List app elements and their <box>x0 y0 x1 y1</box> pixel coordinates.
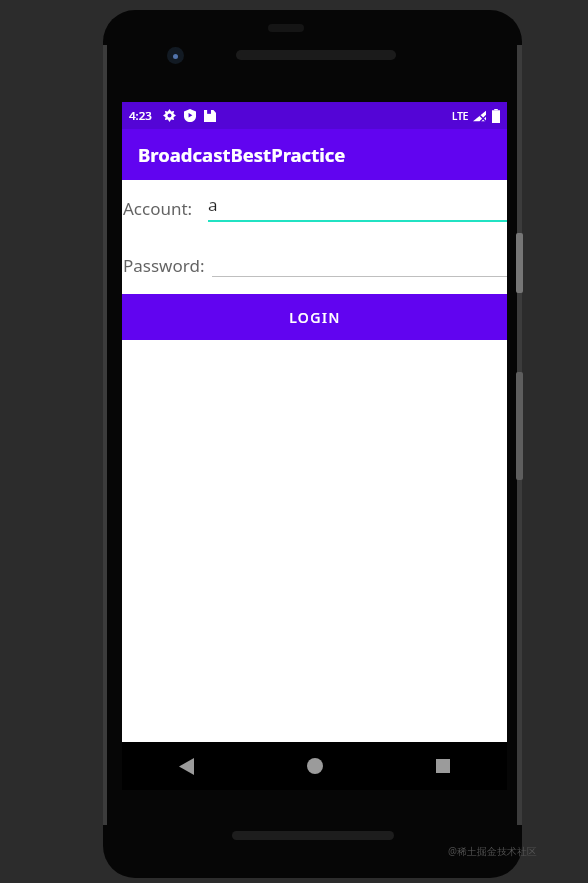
button[interactable]: Home <box>251 742 379 790</box>
staticText: Password: <box>123 254 205 277</box>
staticText: @稀土掘金技术社区 <box>448 844 537 858</box>
staticText: LOGIN <box>289 308 341 327</box>
button[interactable] <box>212 236 507 294</box>
staticText: a <box>208 193 218 216</box>
button[interactable]: LOGIN <box>122 294 507 340</box>
button[interactable]: Recent apps <box>379 742 507 790</box>
staticText: 4:23 <box>129 108 152 124</box>
staticText: LTE <box>452 109 469 123</box>
button[interactable]: Back <box>122 742 251 790</box>
button[interactable]: a <box>208 180 507 236</box>
staticText: BroadcastBestPractice <box>138 142 346 167</box>
staticText: Account: <box>123 197 193 220</box>
